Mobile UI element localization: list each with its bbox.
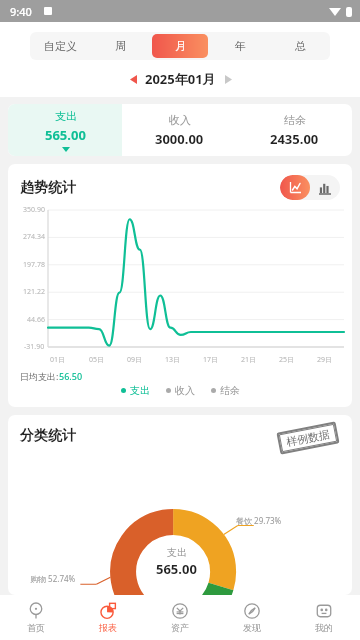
staticText: 21日 (241, 355, 257, 365)
button[interactable]: 我的 (288, 595, 360, 640)
staticText: 日均支出: (20, 370, 59, 382)
staticText: 趋势统计 (20, 179, 76, 197)
button[interactable]: 年 (212, 34, 268, 58)
staticText: 25日 (279, 355, 295, 365)
staticText: 05日 (89, 355, 105, 365)
staticText: 2025年01月 (145, 70, 216, 88)
staticText: 自定义 (44, 39, 77, 53)
staticText: 餐饮 29.73% (236, 515, 282, 526)
staticText: 支出 (55, 109, 77, 123)
staticText: 资产 (171, 622, 189, 633)
button[interactable]: Line chart (280, 175, 310, 200)
button[interactable]: 自定义 (32, 34, 88, 58)
button[interactable]: Bar chart (310, 175, 340, 200)
staticText: 29日 (317, 355, 333, 365)
staticText: -31.90 (24, 342, 45, 352)
button[interactable]: 支出 (8, 104, 122, 156)
staticText: 购物 52.74% (30, 573, 76, 584)
staticText: 350.90 (23, 205, 45, 215)
button[interactable]: 总 (272, 34, 328, 58)
button[interactable]: 发现 (216, 595, 288, 640)
button[interactable]: 结余 (237, 104, 352, 156)
staticText: 09日 (127, 355, 143, 365)
button[interactable]: 支出 (121, 384, 150, 397)
button[interactable]: 周 (92, 34, 148, 58)
staticText: 9:40 (10, 4, 32, 19)
staticText: 56.50 (59, 370, 83, 382)
staticText: 首页 (27, 622, 45, 633)
staticText: 支出 (130, 384, 150, 397)
staticText: 44.66 (27, 315, 45, 325)
staticText: 样例数据 (285, 427, 331, 449)
staticText: 01日 (50, 355, 66, 365)
button[interactable]: 结余 (211, 384, 240, 397)
staticText: 总 (295, 39, 306, 53)
staticText: 月 (175, 39, 186, 53)
staticText: 565.00 (156, 560, 197, 578)
button[interactable]: Previous month (124, 70, 142, 88)
staticText: 分类统计 (20, 427, 76, 445)
button[interactable]: 收入 (166, 384, 195, 397)
staticText: 121.22 (23, 287, 45, 297)
staticText: 结余 (220, 384, 240, 397)
button[interactable]: 资产 (144, 595, 216, 640)
staticText: 197.78 (23, 260, 45, 270)
staticText: 收入 (175, 384, 195, 397)
staticText: 发现 (243, 622, 261, 633)
button[interactable]: 月 (152, 34, 208, 58)
staticText: 年 (235, 39, 246, 53)
button[interactable]: Next month (219, 70, 237, 88)
staticText: 我的 (315, 622, 333, 633)
staticText: 3000.00 (155, 130, 204, 148)
staticText: 收入 (169, 113, 191, 127)
button[interactable]: 报表 (72, 595, 144, 640)
button[interactable]: 首页 (0, 595, 72, 640)
staticText: 565.00 (45, 126, 86, 144)
staticText: 支出 (167, 546, 187, 559)
button[interactable]: 收入 (122, 104, 237, 156)
staticText: 13日 (165, 355, 181, 365)
staticText: 周 (115, 39, 126, 53)
staticText: 结余 (284, 113, 306, 127)
staticText: 报表 (99, 622, 117, 633)
staticText: 2435.00 (270, 130, 319, 148)
staticText: 17日 (203, 355, 219, 365)
staticText: 274.34 (23, 232, 45, 242)
